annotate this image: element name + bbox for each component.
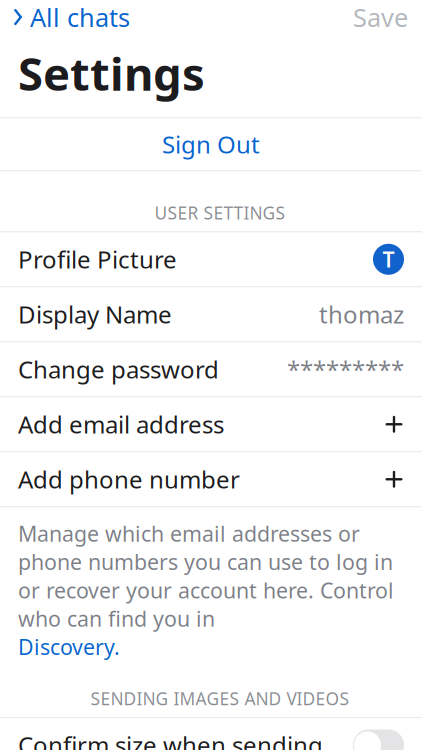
staticText: Display Name bbox=[18, 298, 172, 330]
staticText: Profile Picture bbox=[18, 243, 177, 275]
button[interactable]: Change password bbox=[0, 342, 422, 397]
staticText: Discovery. bbox=[18, 633, 120, 661]
staticText: Sign Out bbox=[162, 128, 260, 160]
staticText: Change password bbox=[18, 353, 219, 385]
staticText: Confirm size when sending bbox=[18, 729, 323, 750]
button[interactable]: All chats bbox=[0, 0, 142, 39]
button[interactable]: Sign Out bbox=[0, 118, 422, 170]
button[interactable]: Display Name bbox=[0, 287, 422, 342]
button[interactable]: Add phone number bbox=[0, 452, 422, 507]
staticText: ********* bbox=[287, 353, 404, 385]
staticText: USER SETTINGS bbox=[154, 201, 285, 224]
staticText: Settings bbox=[18, 43, 205, 103]
button[interactable]: Discovery. bbox=[18, 633, 120, 661]
staticText: Add phone number bbox=[18, 463, 240, 495]
staticText: Manage which email addresses or phone nu… bbox=[18, 519, 394, 633]
staticText: Add email address bbox=[18, 408, 224, 440]
button[interactable]: Add email address bbox=[0, 397, 422, 452]
staticText: SENDING IMAGES AND VIDEOS bbox=[90, 687, 349, 710]
staticText: Save bbox=[353, 0, 408, 34]
button[interactable]: Save bbox=[339, 0, 422, 39]
button[interactable]: Profile Picture bbox=[0, 232, 422, 287]
staticText: All chats bbox=[30, 0, 130, 34]
staticText: T bbox=[382, 245, 394, 273]
button[interactable]: Confirm size when sending bbox=[0, 718, 422, 750]
staticText: thomaz bbox=[319, 298, 404, 330]
